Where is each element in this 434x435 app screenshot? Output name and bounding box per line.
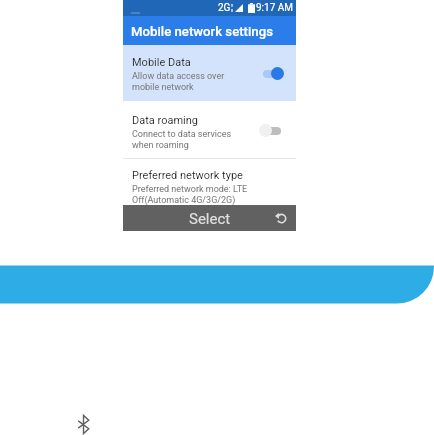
staticText: Mobile network settings — [131, 24, 273, 39]
staticText: 2G — [218, 2, 231, 14]
staticText: Preferred network type — [132, 169, 243, 182]
button[interactable]: Refresh — [275, 212, 288, 225]
staticText: Off(Automatic 4G/3G/2G) — [132, 195, 236, 206]
staticText: Select — [189, 210, 231, 228]
button[interactable]: Preferred network type — [123, 165, 296, 209]
staticText: Allow data access over — [132, 71, 225, 82]
button[interactable]: Mobile Data — [123, 45, 296, 101]
button[interactable]: Bluetooth — [76, 414, 91, 435]
staticText: when roaming — [132, 140, 189, 151]
staticText: Preferred network mode: LTE — [132, 184, 248, 195]
button[interactable]: Mobile network settings — [123, 16, 296, 45]
staticText: 9:17 AM — [256, 2, 294, 14]
staticText: Mobile Data — [132, 56, 191, 69]
button[interactable]: Data roaming — [123, 110, 296, 156]
staticText: mobile network — [132, 82, 194, 93]
staticText: Data roaming — [132, 114, 198, 127]
button[interactable]: Select — [123, 205, 296, 231]
staticText: Connect to data services — [132, 129, 232, 140]
